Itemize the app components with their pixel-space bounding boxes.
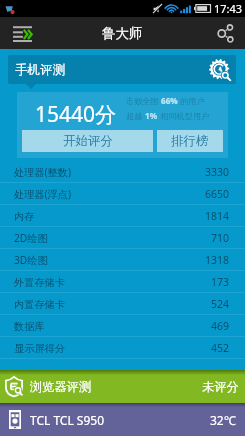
staticText: 内存 bbox=[14, 210, 35, 223]
staticText: 452 bbox=[211, 341, 230, 355]
button[interactable]: 外置存储卡 bbox=[0, 271, 245, 293]
staticText: 469 bbox=[211, 319, 230, 333]
button[interactable]: 浏览器评测 bbox=[0, 370, 245, 403]
staticText: 3D绘图 bbox=[14, 253, 48, 267]
staticText: 数据库 bbox=[14, 320, 45, 333]
staticText: 处理器(整数) bbox=[14, 165, 72, 179]
staticText: 173 bbox=[211, 275, 230, 289]
button[interactable]: 排行榜 bbox=[157, 130, 223, 152]
staticText: 524 bbox=[211, 297, 230, 311]
staticText: 32℃ bbox=[210, 412, 236, 428]
button[interactable]: 内存 bbox=[0, 205, 245, 227]
button[interactable]: Menu bbox=[0, 17, 44, 49]
staticText: 击败全国 bbox=[126, 95, 161, 106]
button[interactable]: TCL TCL S950 bbox=[0, 403, 245, 436]
staticText: 1814 bbox=[205, 209, 230, 223]
staticText: 相同机型用户 bbox=[158, 110, 210, 121]
button[interactable]: 显示屏得分 bbox=[0, 337, 245, 359]
staticText: 的用户 bbox=[178, 95, 205, 106]
staticText: 未评分 bbox=[202, 379, 239, 394]
staticText: 6650 bbox=[205, 187, 230, 201]
button[interactable]: 处理器(浮点) bbox=[0, 183, 245, 205]
staticText: 开始评分 bbox=[63, 133, 113, 149]
button[interactable]: 3D绘图 bbox=[0, 249, 245, 271]
staticText: 66% bbox=[161, 95, 178, 106]
button[interactable]: 数据库 bbox=[0, 315, 245, 337]
staticText: 排行榜 bbox=[171, 133, 209, 149]
staticText: 内置存储卡 bbox=[14, 298, 65, 311]
staticText: 外置存储卡 bbox=[14, 276, 65, 289]
staticText: 15440分 bbox=[35, 100, 117, 129]
staticText: 710 bbox=[211, 231, 230, 245]
button[interactable]: 内置存储卡 bbox=[0, 293, 245, 315]
staticText: 手机评测 bbox=[15, 62, 65, 78]
staticText: 超越 bbox=[126, 110, 145, 121]
button[interactable]: 处理器(整数) bbox=[0, 161, 245, 183]
staticText: TCL TCL S950 bbox=[30, 412, 105, 428]
staticText: 1318 bbox=[205, 253, 230, 267]
staticText: 浏览器评测 bbox=[30, 379, 91, 394]
staticText: 鲁大师 bbox=[102, 25, 143, 42]
staticText: 17:43 bbox=[214, 1, 243, 16]
staticText: 1% bbox=[145, 110, 158, 121]
staticText: 处理器(浮点) bbox=[14, 187, 72, 201]
staticText: 3330 bbox=[205, 165, 230, 179]
staticText: 显示屏得分 bbox=[14, 342, 65, 355]
button[interactable]: Share bbox=[205, 17, 245, 49]
button[interactable]: 2D绘图 bbox=[0, 227, 245, 249]
staticText: 2D绘图 bbox=[14, 231, 48, 245]
button[interactable]: Detect bbox=[208, 58, 231, 81]
button[interactable]: 开始评分 bbox=[22, 130, 153, 152]
